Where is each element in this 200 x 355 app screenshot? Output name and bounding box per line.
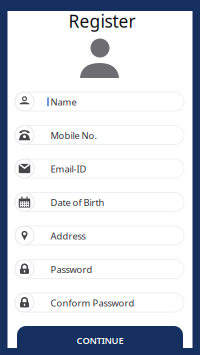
staticText: Password	[50, 263, 92, 275]
staticText: Conform Password	[50, 297, 134, 309]
button[interactable]: CONTINUE	[17, 326, 183, 355]
button[interactable]: Email-ID	[0, 0, 200, 355]
staticText: Date of Birth	[50, 196, 104, 208]
staticText: Address	[50, 230, 85, 242]
staticText: Register	[68, 9, 135, 32]
button[interactable]: Date of Birth	[0, 0, 200, 355]
staticText: Name	[50, 96, 76, 108]
button[interactable]: Name	[0, 0, 200, 355]
button[interactable]: Mobile No.	[0, 0, 200, 355]
button[interactable]: Password	[0, 0, 200, 355]
staticText: Email-ID	[50, 163, 86, 175]
button[interactable]: Address	[0, 0, 200, 355]
button[interactable]: Conform Password	[0, 0, 200, 355]
staticText: Mobile No.	[50, 129, 97, 141]
staticText: CONTINUE	[76, 334, 123, 347]
